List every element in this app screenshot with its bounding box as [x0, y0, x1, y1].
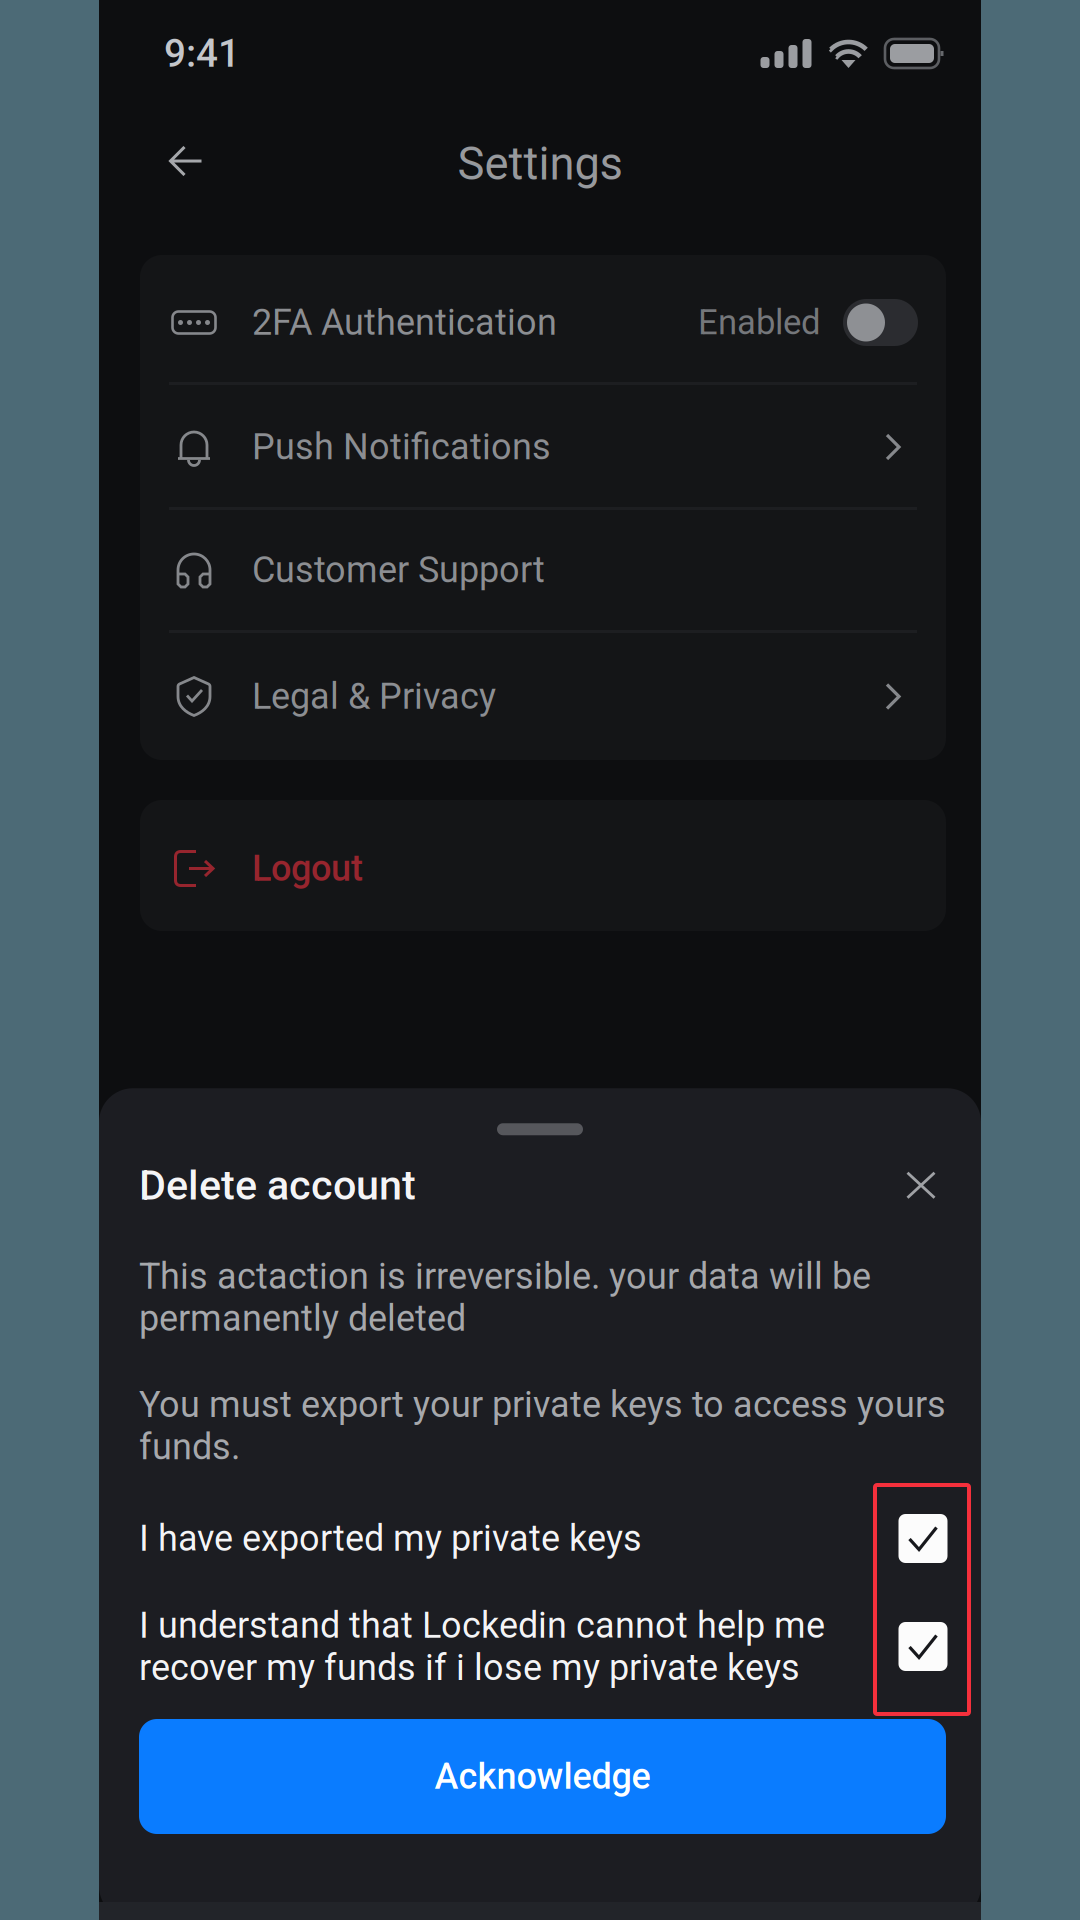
staticText: Push Notifications: [252, 426, 551, 468]
button[interactable]: Acknowledge: [99, 1719, 981, 1834]
button[interactable]: 2FA Authentication: [140, 255, 946, 382]
button[interactable]: Customer Support: [140, 510, 946, 630]
button[interactable]: Close: [892, 1156, 950, 1214]
button[interactable]: Legal & Privacy: [140, 633, 946, 760]
staticText: 2FA Authentication: [252, 301, 557, 344]
staticText: Legal & Privacy: [252, 675, 496, 718]
staticText: Enabled: [698, 302, 821, 343]
staticText: Delete account: [139, 1161, 416, 1209]
staticText: Acknowledge: [434, 1755, 650, 1798]
button[interactable]: Back: [151, 126, 221, 196]
staticText: 9:41: [164, 31, 240, 76]
staticText: This actaction is irreversible. your dat…: [139, 1255, 871, 1340]
button[interactable]: Push Notifications: [140, 385, 946, 507]
staticText: Logout: [252, 847, 363, 890]
button[interactable]: Logout: [99, 800, 981, 931]
button[interactable]: I understand that Lockedin cannot help m…: [887, 1610, 959, 1682]
staticText: Settings: [457, 137, 622, 190]
button[interactable]: I have exported my private keys: [887, 1502, 959, 1574]
staticText: Customer Support: [252, 549, 545, 591]
staticText: You must export your private keys to acc…: [139, 1384, 946, 1468]
staticText: I have exported my private keys: [139, 1517, 642, 1560]
staticText: I understand that Lockedin cannot help m…: [139, 1604, 825, 1689]
